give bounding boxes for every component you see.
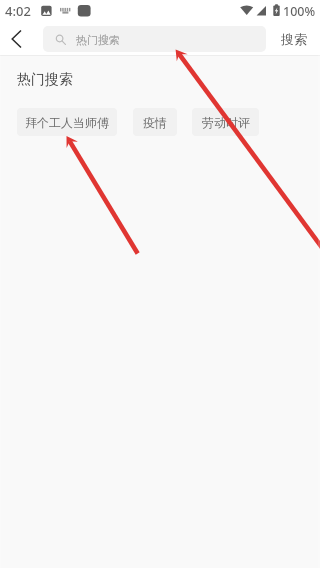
button[interactable]: 拜个工人当师傅 bbox=[17, 108, 117, 136]
staticText: 热门搜索 bbox=[76, 33, 120, 47]
staticText: 4:02 bbox=[5, 2, 31, 20]
button[interactable]: 热门搜索 bbox=[43, 26, 266, 52]
button[interactable]: 劳动时评 bbox=[192, 108, 259, 136]
staticText: 劳动时评 bbox=[202, 115, 250, 130]
staticText: 100% bbox=[283, 3, 316, 20]
staticText: 热门搜索 bbox=[17, 71, 73, 89]
button[interactable]: 搜索 bbox=[268, 26, 320, 52]
button[interactable]: 疫情 bbox=[133, 108, 177, 136]
staticText: 拜个工人当师傅 bbox=[25, 115, 109, 130]
button[interactable]: Back bbox=[0, 22, 34, 55]
staticText: 疫情 bbox=[143, 115, 167, 130]
staticText: 搜索 bbox=[281, 31, 307, 47]
